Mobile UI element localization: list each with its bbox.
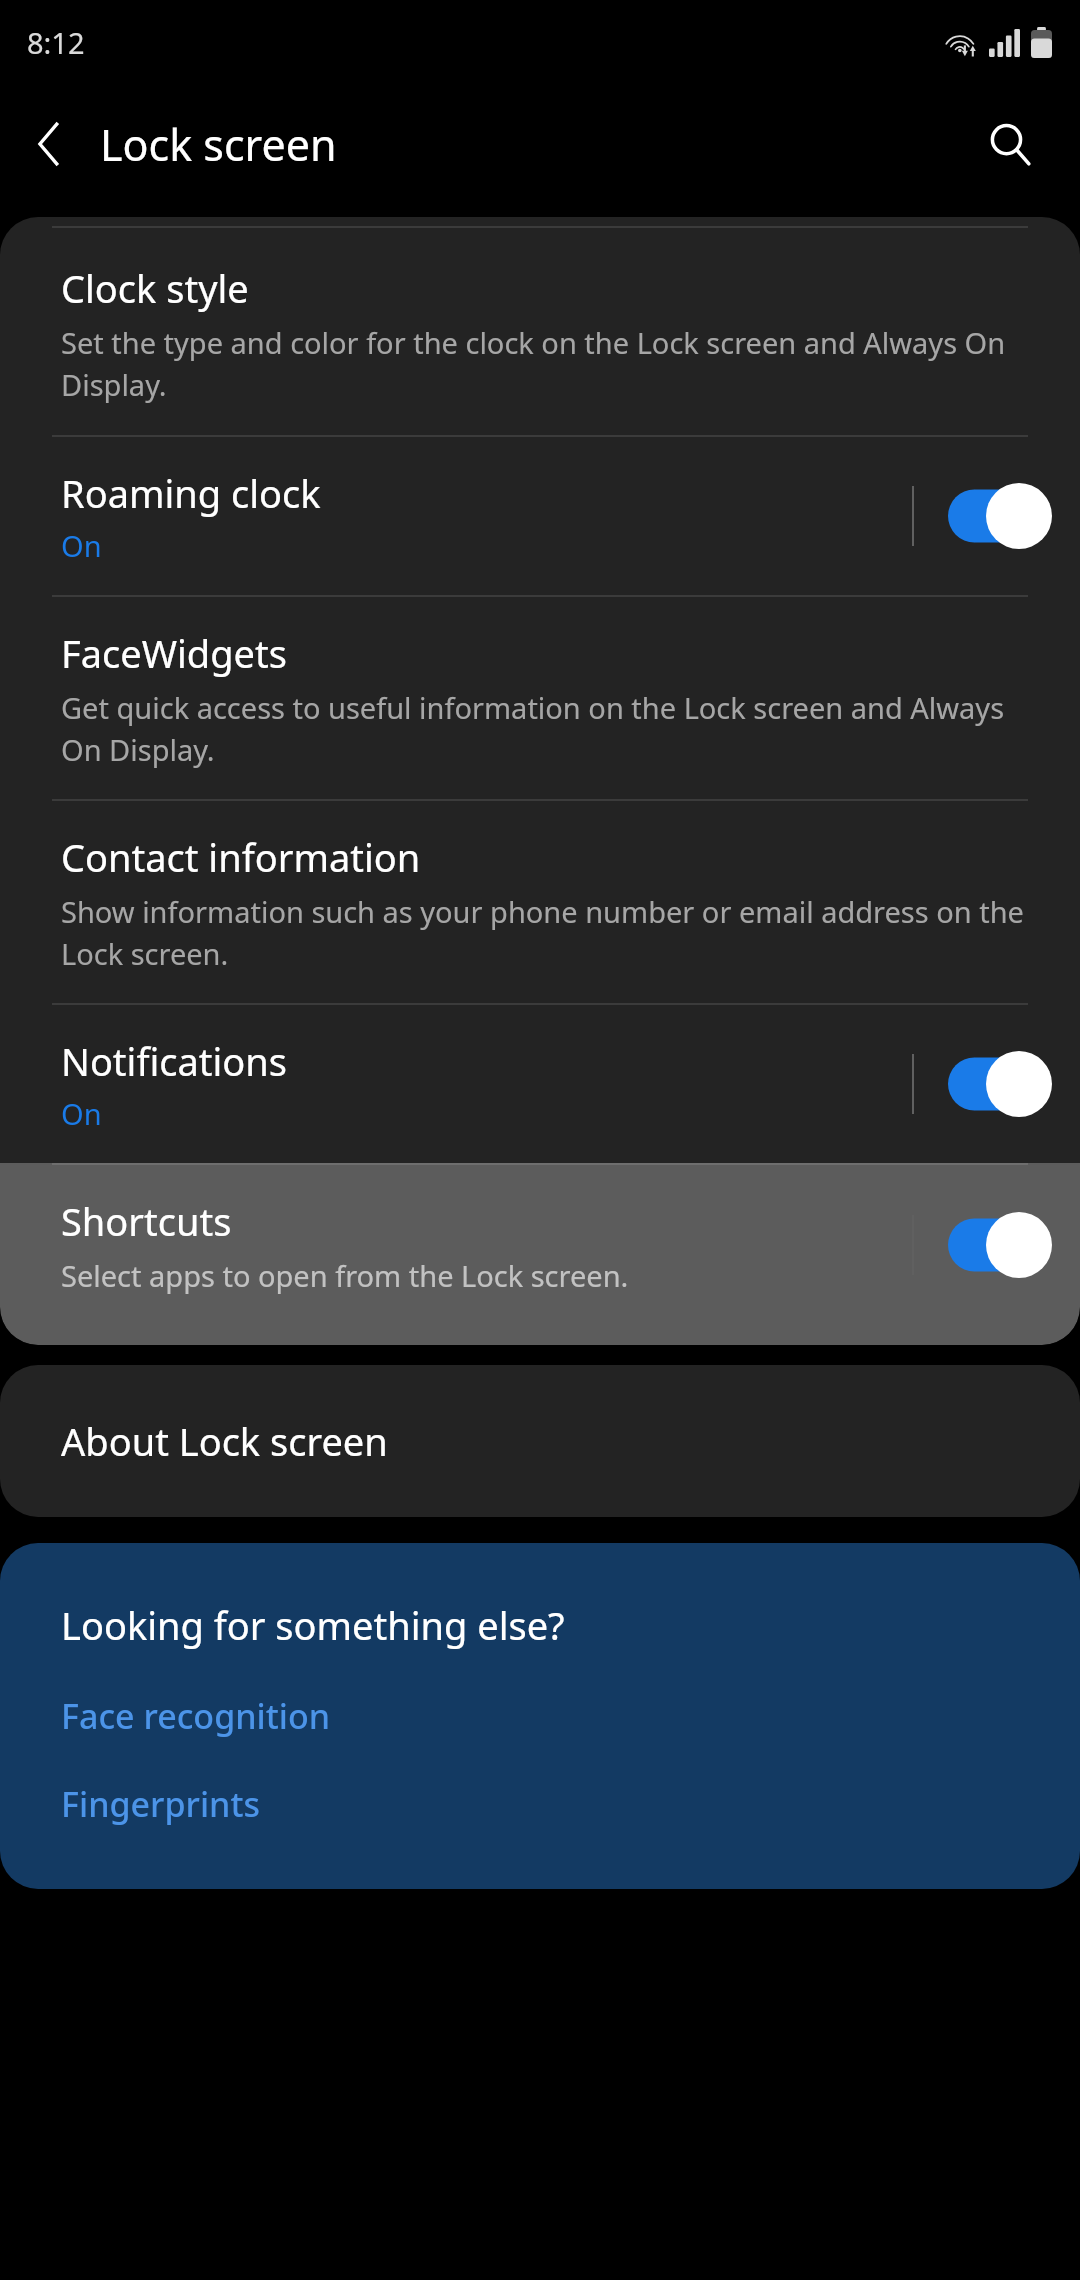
button[interactable]: Roaming clock [0, 437, 1080, 595]
staticText: Get quick access to useful information o… [61, 688, 1024, 769]
staticText: About Lock screen [61, 1415, 388, 1467]
staticText: Lock screen [100, 115, 337, 174]
staticText: Roaming clock [61, 467, 321, 519]
staticText: Show information such as your phone numb… [61, 892, 1024, 973]
staticText: Looking for something else? [61, 1599, 565, 1651]
button[interactable]: Back [0, 94, 100, 194]
staticText: Shortcuts [61, 1195, 232, 1247]
button[interactable]: Toggle Roaming clock [948, 479, 1054, 553]
staticText: On [61, 1094, 102, 1133]
staticText: Contact information [61, 831, 421, 883]
staticText: Face recognition [61, 1693, 331, 1739]
button[interactable]: Toggle Notifications [948, 1047, 1054, 1121]
staticText: On [61, 526, 102, 565]
button[interactable]: Search [960, 94, 1060, 194]
staticText: Fingerprints [61, 1781, 260, 1827]
button[interactable]: Shortcuts [0, 1163, 1080, 1345]
button[interactable]: Contact information [0, 801, 1080, 1003]
button[interactable]: Fingerprints [61, 1781, 1040, 1827]
staticText: Clock style [61, 262, 249, 314]
button[interactable]: Face recognition [61, 1693, 1040, 1739]
staticText: 8:12 [27, 23, 85, 62]
staticText: FaceWidgets [61, 627, 287, 679]
button[interactable]: Notifications [0, 1005, 1080, 1163]
staticText: Select apps to open from the Lock screen… [61, 1256, 629, 1295]
button[interactable]: Toggle Shortcuts [948, 1208, 1054, 1282]
button[interactable]: About Lock screen [0, 1365, 1080, 1517]
button[interactable]: FaceWidgets [0, 597, 1080, 799]
staticText: Notifications [61, 1035, 288, 1087]
button[interactable]: Clock style [0, 228, 1080, 435]
staticText: Set the type and color for the clock on … [61, 323, 1024, 404]
